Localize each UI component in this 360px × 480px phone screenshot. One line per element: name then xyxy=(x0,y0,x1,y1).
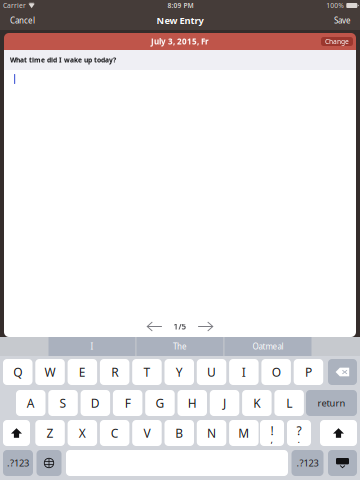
staticText: X xyxy=(79,425,86,441)
button[interactable]: A xyxy=(16,390,45,416)
staticText: C xyxy=(111,425,119,441)
staticText: Z xyxy=(46,425,53,441)
staticText: V xyxy=(143,425,150,441)
button[interactable]: G xyxy=(145,390,175,416)
staticText: 1/5 xyxy=(173,321,186,332)
button[interactable]: I xyxy=(229,359,259,385)
staticText: N xyxy=(207,425,216,441)
staticText: W xyxy=(44,364,55,380)
staticText: I xyxy=(90,341,93,352)
staticText: I xyxy=(242,364,246,380)
button[interactable]: O xyxy=(261,359,291,385)
staticText: What time did I wake up today? xyxy=(10,56,116,64)
button[interactable]: F xyxy=(113,390,142,416)
staticText: D xyxy=(91,395,100,411)
button[interactable]: P xyxy=(294,359,323,385)
button[interactable]: W xyxy=(35,359,65,385)
staticText: T xyxy=(143,364,150,380)
staticText: . xyxy=(297,433,300,446)
button[interactable]: .?123 xyxy=(3,450,33,476)
button[interactable]: Shift xyxy=(320,420,357,446)
staticText: P xyxy=(305,364,312,380)
button[interactable]: .?123 xyxy=(291,450,323,476)
button[interactable]: S xyxy=(48,390,78,416)
staticText: The xyxy=(173,341,187,352)
staticText: Cancel xyxy=(10,15,35,26)
staticText: Carrier xyxy=(3,1,26,10)
staticText: Oatmeal xyxy=(252,341,283,352)
button[interactable]: V xyxy=(132,420,162,446)
staticText: return xyxy=(317,397,345,409)
staticText: S xyxy=(59,395,66,411)
staticText: M xyxy=(238,425,249,441)
button[interactable]: Next question xyxy=(197,320,213,333)
staticText: B xyxy=(175,425,183,441)
button[interactable]: ! xyxy=(260,420,284,446)
button[interactable]: K xyxy=(242,390,272,416)
button[interactable]: return xyxy=(306,390,357,416)
staticText: Q xyxy=(13,364,22,380)
staticText: H xyxy=(188,395,197,411)
button[interactable]: ? xyxy=(287,420,311,446)
button[interactable]: Next keyboard xyxy=(36,450,61,476)
staticText: Change xyxy=(325,37,349,46)
button[interactable]: Oatmeal xyxy=(224,337,311,356)
button[interactable]: B xyxy=(164,420,194,446)
staticText: 8:09 PM xyxy=(167,1,193,10)
staticText: .?123 xyxy=(296,457,318,469)
button[interactable]: M xyxy=(229,420,259,446)
button[interactable]: U xyxy=(197,359,226,385)
staticText: ! xyxy=(270,422,273,438)
button[interactable]: Previous question xyxy=(146,320,162,333)
button[interactable]: Hide keyboard xyxy=(328,450,357,476)
staticText: .?123 xyxy=(7,457,29,469)
button[interactable]: J xyxy=(210,390,239,416)
button[interactable]: H xyxy=(177,390,207,416)
staticText: R xyxy=(111,364,118,380)
staticText: July 3, 2015, Fr xyxy=(151,36,209,47)
staticText: ? xyxy=(296,422,301,438)
button[interactable]: Z xyxy=(35,420,65,446)
staticText: O xyxy=(272,364,281,380)
button[interactable]: Delete xyxy=(328,359,357,385)
button[interactable]: I xyxy=(48,337,135,356)
staticText: New Entry xyxy=(156,14,203,27)
button[interactable]: Save xyxy=(330,12,355,29)
button[interactable]: The xyxy=(136,337,223,356)
button[interactable]: Shift xyxy=(3,420,30,446)
staticText: A xyxy=(27,395,35,411)
button[interactable]: C xyxy=(100,420,129,446)
button[interactable]: Change xyxy=(321,37,353,46)
button[interactable]: Cancel xyxy=(6,12,39,29)
button[interactable]: N xyxy=(197,420,226,446)
button[interactable]: Q xyxy=(3,359,32,385)
staticText: J xyxy=(223,395,226,411)
button[interactable]: L xyxy=(274,390,304,416)
button[interactable]: E xyxy=(68,359,97,385)
button[interactable]: D xyxy=(81,390,110,416)
staticText: E xyxy=(79,364,86,380)
staticText: G xyxy=(155,395,164,411)
button[interactable]: R xyxy=(100,359,129,385)
staticText: U xyxy=(207,364,216,380)
staticText: K xyxy=(253,395,260,411)
staticText: F xyxy=(125,395,131,411)
button[interactable]: Y xyxy=(164,359,194,385)
staticText: L xyxy=(286,395,292,411)
button[interactable]: T xyxy=(132,359,162,385)
staticText: Y xyxy=(176,364,183,380)
staticText: 100% xyxy=(326,1,344,10)
staticText: , xyxy=(270,433,273,446)
button[interactable]: X xyxy=(68,420,97,446)
staticText: Save xyxy=(334,15,351,26)
